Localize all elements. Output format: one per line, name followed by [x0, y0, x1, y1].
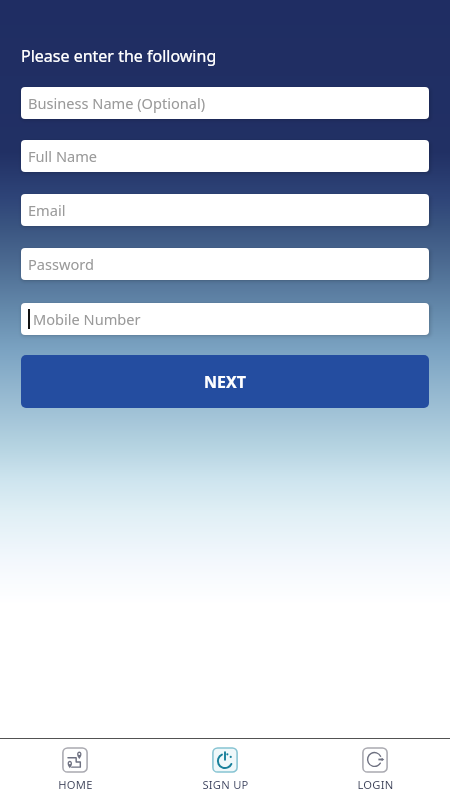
staticText: LOGIN: [357, 777, 394, 792]
button[interactable]: Password: [21, 248, 429, 280]
button[interactable]: Full Name: [21, 140, 429, 172]
staticText: Please enter the following: [21, 45, 217, 67]
button[interactable]: NEXT: [21, 355, 429, 408]
button[interactable]: Home: [0, 744, 150, 795]
staticText: Business Name (Optional): [28, 93, 206, 113]
button[interactable]: Mobile Number: [21, 303, 429, 335]
staticText: Full Name: [28, 146, 98, 166]
staticText: Email: [28, 200, 66, 220]
staticText: NEXT: [204, 371, 246, 393]
staticText: SIGN UP: [202, 777, 249, 792]
staticText: Mobile Number: [33, 309, 141, 329]
button[interactable]: Business Name (Optional): [21, 87, 429, 119]
staticText: HOME: [58, 777, 93, 792]
button[interactable]: Login: [300, 744, 450, 795]
staticText: Password: [28, 254, 95, 274]
button[interactable]: Email: [21, 194, 429, 226]
button[interactable]: Sign up: [150, 744, 300, 795]
